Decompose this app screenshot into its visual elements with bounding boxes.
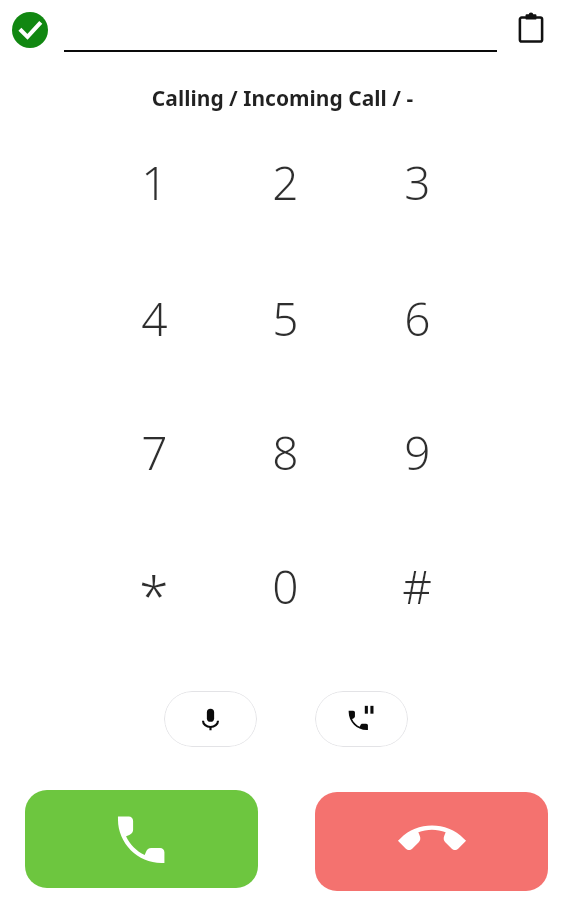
button[interactable]: Call: [25, 790, 258, 888]
button[interactable]: Verified: [12, 12, 48, 48]
button[interactable]: [64, 10, 497, 52]
staticText: 0: [272, 555, 299, 618]
button[interactable]: 2: [229, 126, 341, 238]
button[interactable]: 6: [361, 262, 473, 374]
staticText: 9: [404, 421, 431, 484]
button[interactable]: 5: [229, 262, 341, 374]
button[interactable]: Mute microphone: [164, 691, 257, 747]
staticText: 8: [272, 421, 299, 484]
button[interactable]: 4: [98, 262, 210, 374]
staticText: 3: [404, 151, 431, 214]
button[interactable]: 3: [361, 126, 473, 238]
staticText: #: [402, 555, 432, 618]
button[interactable]: Paste from clipboard: [516, 13, 546, 43]
button[interactable]: Hold call: [315, 691, 408, 747]
staticText: Calling / Incoming Call / -: [0, 84, 565, 113]
button[interactable]: *: [98, 530, 210, 642]
button[interactable]: 8: [229, 396, 341, 508]
button[interactable]: 9: [361, 396, 473, 508]
button[interactable]: 1: [98, 126, 210, 238]
button[interactable]: End call: [315, 792, 548, 891]
staticText: 4: [141, 287, 168, 350]
button[interactable]: 0: [229, 530, 341, 642]
staticText: 1: [141, 151, 168, 214]
staticText: *: [139, 558, 169, 632]
staticText: 7: [141, 421, 168, 484]
staticText: 6: [404, 287, 431, 350]
staticText: 5: [272, 287, 299, 350]
button[interactable]: #: [361, 530, 473, 642]
staticText: 2: [272, 151, 299, 214]
button[interactable]: 7: [98, 396, 210, 508]
